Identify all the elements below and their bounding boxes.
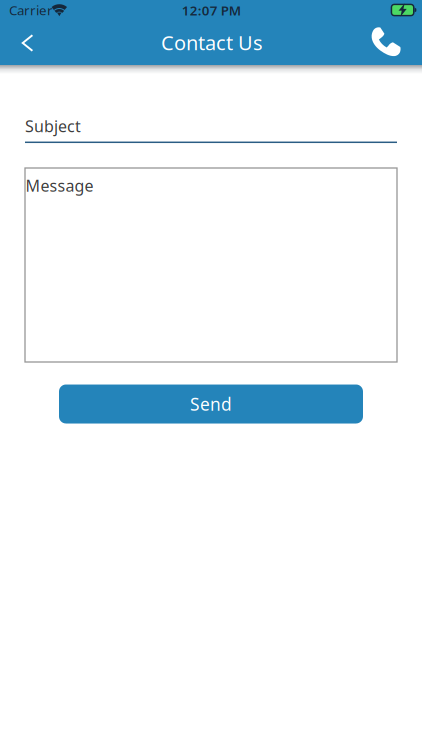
button[interactable]: Call <box>364 20 408 64</box>
staticText: Contact Us <box>161 29 263 56</box>
staticText: Subject <box>25 115 81 137</box>
staticText: Carrier <box>9 1 53 19</box>
staticText: Send <box>190 392 232 415</box>
staticText: Message <box>25 175 93 196</box>
button[interactable]: Back <box>6 21 50 65</box>
button[interactable]: Send <box>59 384 363 423</box>
staticText: 12:07 PM <box>182 1 241 19</box>
